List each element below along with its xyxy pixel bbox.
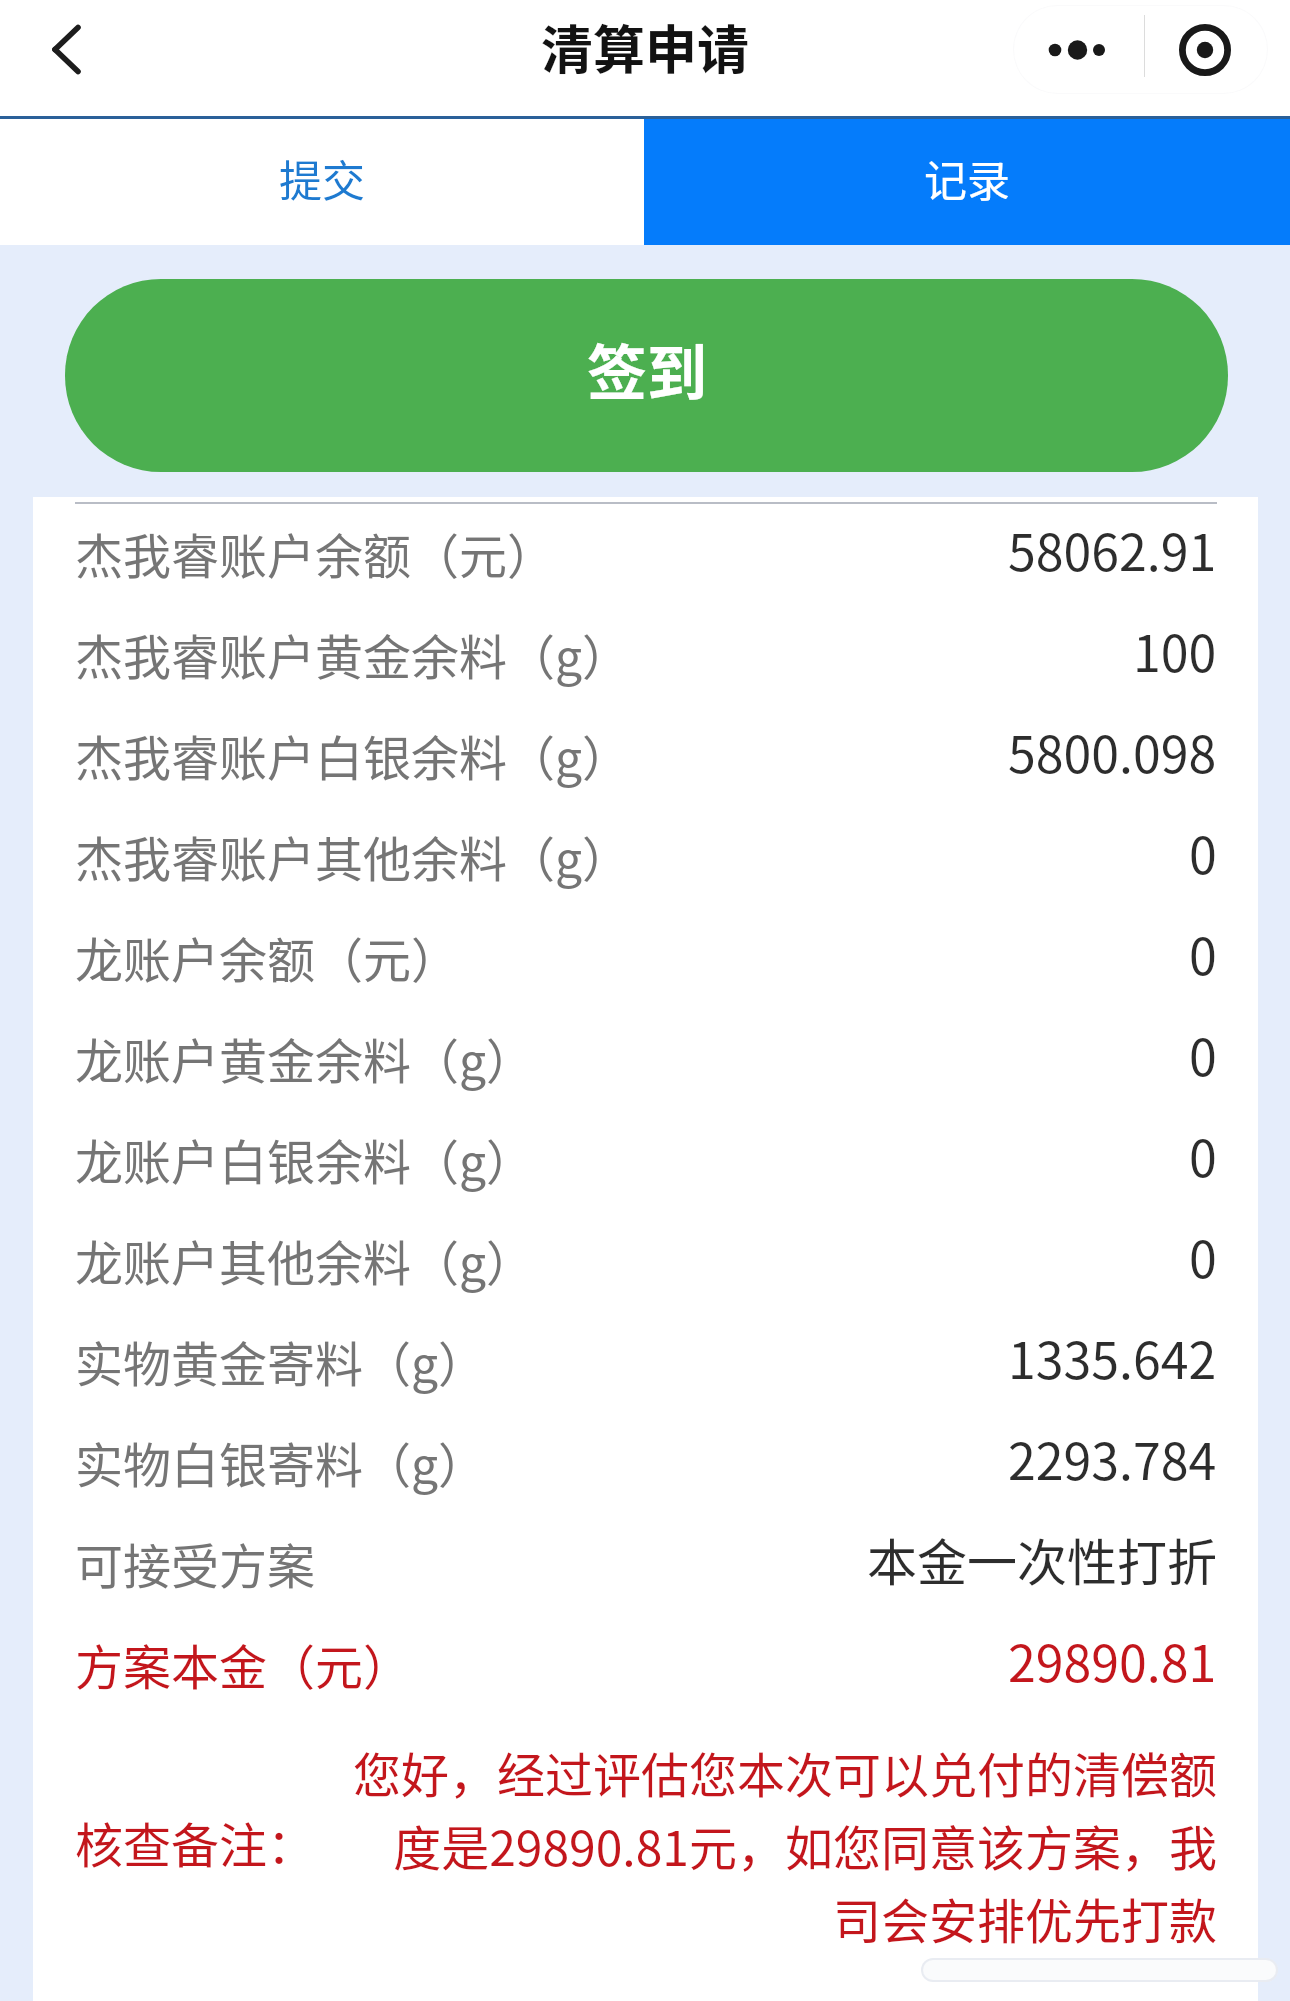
staticText: 您好，经过评估您本次可以兑付的清偿额 [352, 1737, 1217, 1807]
staticText: 5800.098 [1008, 715, 1217, 787]
button[interactable]: 实物白银寄料（g） [75, 1413, 1217, 1514]
staticText: 龙账户其他余料（g） [75, 1225, 535, 1295]
button[interactable]: 杰我睿账户余额（元） [75, 504, 1217, 605]
staticText: 度是29890.81元，如您同意该方案，我 [393, 1810, 1217, 1880]
staticText: 实物白银寄料（g） [75, 1427, 487, 1497]
staticText: 本金一次性打折 [867, 1523, 1217, 1595]
staticText: 杰我睿账户黄金余料（g） [75, 619, 631, 689]
button[interactable]: More options [1014, 6, 1144, 93]
button[interactable]: 签到 [65, 279, 1228, 472]
button[interactable]: 实物黄金寄料（g） [75, 1312, 1217, 1413]
button[interactable]: 杰我睿账户白银余料（g） [75, 706, 1217, 807]
button[interactable]: 提交 [0, 119, 644, 245]
staticText: 0 [1189, 1018, 1217, 1090]
staticText: 龙账户白银余料（g） [75, 1124, 535, 1194]
staticText: 100 [1133, 614, 1217, 686]
button[interactable]: 龙账户余额（元） [75, 908, 1217, 1009]
staticText: 29890.81 [1008, 1624, 1217, 1696]
staticText: 实物黄金寄料（g） [75, 1326, 487, 1396]
staticText: 0 [1189, 1119, 1217, 1191]
staticText: 记录 [924, 147, 1010, 209]
staticText: 核查备注： [75, 1807, 316, 1877]
staticText: 0 [1189, 917, 1217, 989]
staticText: 杰我睿账户其他余料（g） [75, 821, 631, 891]
button[interactable]: 龙账户白银余料（g） [75, 1110, 1217, 1211]
button[interactable]: 方案本金（元） [75, 1615, 1217, 1716]
staticText: 58062.91 [1008, 513, 1217, 585]
staticText: 2293.784 [1008, 1422, 1217, 1494]
staticText: 0 [1189, 816, 1217, 888]
button[interactable]: Back [8, 5, 96, 93]
staticText: 龙账户黄金余料（g） [75, 1023, 535, 1093]
button[interactable]: 记录 [644, 119, 1290, 245]
button[interactable]: 可接受方案 [75, 1514, 1217, 1615]
staticText: 清算申请 [541, 9, 750, 84]
button[interactable]: Close mini program [1142, 6, 1267, 93]
staticText: 0 [1189, 1220, 1217, 1292]
staticText: 方案本金（元） [75, 1629, 412, 1699]
staticText: 签到 [587, 325, 707, 412]
staticText: 龙账户余额（元） [75, 922, 460, 992]
staticText: 杰我睿账户白银余料（g） [75, 720, 631, 790]
staticText: 杰我睿账户余额（元） [75, 518, 556, 588]
staticText: 司会安排优先打款 [832, 1883, 1217, 1953]
button[interactable]: 杰我睿账户其他余料（g） [75, 807, 1217, 908]
button[interactable]: 杰我睿账户黄金余料（g） [75, 605, 1217, 706]
button[interactable]: 龙账户其他余料（g） [75, 1211, 1217, 1312]
button[interactable]: 核查备注： [75, 1716, 1217, 1988]
staticText: 提交 [279, 147, 365, 209]
staticText: 可接受方案 [75, 1528, 316, 1598]
staticText: 1335.642 [1008, 1321, 1217, 1393]
button[interactable]: 龙账户黄金余料（g） [75, 1009, 1217, 1110]
